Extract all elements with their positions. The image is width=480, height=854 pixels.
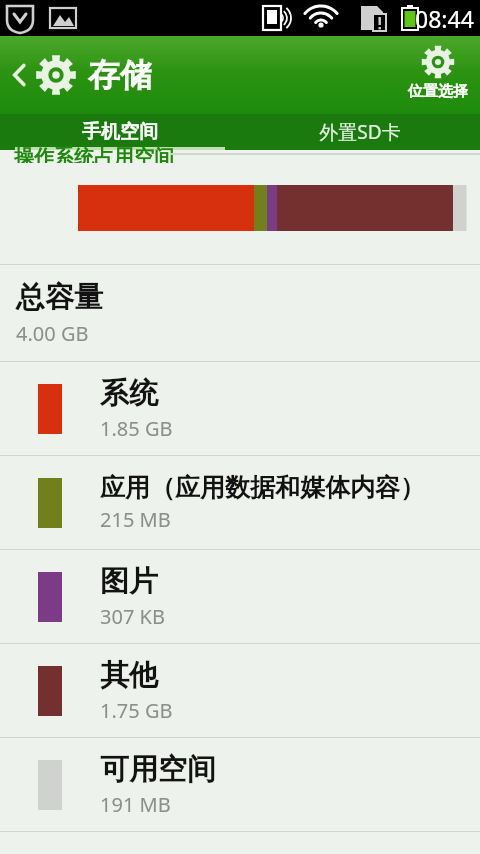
staticText: 08:44 [415, 3, 474, 34]
staticText: 位置选择 [408, 82, 468, 101]
staticText: 操作系统占用空间 [14, 145, 174, 163]
button[interactable]: 总容量 [0, 265, 480, 361]
staticText: 1.85 GB [100, 415, 173, 442]
button[interactable]: 系统 [0, 362, 480, 455]
staticText: 总容量 [16, 279, 103, 316]
staticText: 外置SD卡 [319, 119, 401, 145]
staticText: 系统 [100, 375, 158, 412]
staticText: 4.00 GB [16, 320, 89, 347]
staticText: 应用（应用数据和媒体内容） [100, 472, 425, 503]
staticText: 其他 [100, 657, 158, 694]
button[interactable]: 其他 [0, 644, 480, 737]
staticText: 存储 [88, 55, 152, 95]
button[interactable]: 外置SD卡 [240, 114, 480, 150]
staticText: 图片 [100, 563, 158, 600]
staticText: 191 MB [100, 791, 171, 818]
staticText: 215 MB [100, 506, 171, 533]
button[interactable]: 位置选择 [396, 36, 480, 114]
staticText: 307 KB [100, 603, 165, 630]
staticText: 可用空间 [100, 751, 216, 788]
button[interactable]: 存储 [0, 36, 164, 114]
button[interactable]: 可用空间 [0, 738, 480, 831]
button[interactable]: 图片 [0, 550, 480, 643]
button[interactable]: 手机空间 [0, 114, 240, 150]
button[interactable]: 应用（应用数据和媒体内容） [0, 456, 480, 549]
staticText: 手机空间 [82, 120, 158, 144]
staticText: 1.75 GB [100, 697, 173, 724]
